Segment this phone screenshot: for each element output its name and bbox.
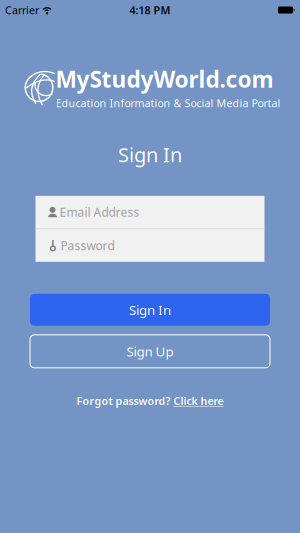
staticText: MyStudyWorld.com <box>55 64 273 94</box>
staticText: 4:18 PM <box>129 3 170 17</box>
button[interactable]: Email Address <box>35 196 264 228</box>
staticText: Education Information & Social Media Por… <box>55 96 280 110</box>
staticText: Email Address <box>59 204 139 220</box>
staticText: Sign In <box>118 141 182 168</box>
button[interactable]: Password <box>35 229 264 262</box>
button[interactable]: Sign Up <box>30 335 270 368</box>
staticText: Carrier <box>5 3 39 17</box>
staticText: Sign In <box>129 301 171 319</box>
button[interactable]: Sign In <box>30 294 270 326</box>
button[interactable]: Forgot password? Click here <box>76 394 223 408</box>
staticText: Password <box>60 238 114 253</box>
staticText: Forgot password? Click here <box>76 394 223 408</box>
staticText: Sign Up <box>126 342 173 360</box>
